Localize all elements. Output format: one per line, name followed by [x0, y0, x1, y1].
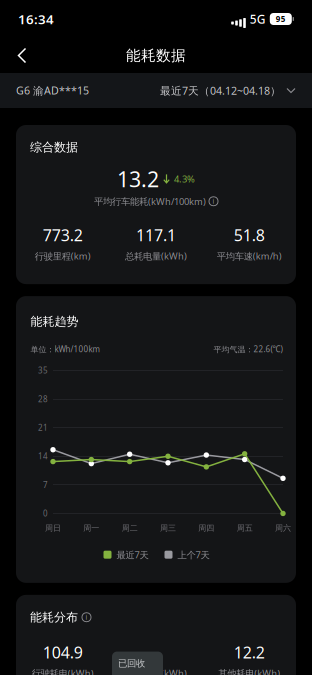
staticText: 21: [38, 422, 48, 433]
staticText: 周一: [83, 523, 99, 533]
staticText: i: [85, 613, 87, 622]
staticText: 平均车速(km/h): [217, 250, 282, 262]
staticText: 773.2: [43, 224, 83, 246]
staticText: 95: [276, 14, 286, 24]
staticText: 综合数据: [30, 140, 78, 155]
button[interactable]: Back: [0, 38, 44, 72]
staticText: 周三: [160, 523, 176, 533]
staticText: 周二: [122, 523, 138, 533]
staticText: 最近7天: [116, 548, 148, 561]
staticText: 13.2: [117, 165, 159, 193]
staticText: G6 渝AD***15: [16, 83, 89, 98]
staticText: 已回收: [118, 658, 145, 669]
staticText: 28: [38, 394, 48, 404]
staticText: 14: [38, 451, 48, 462]
staticText: 16:34: [18, 10, 54, 28]
staticText: 周五: [237, 523, 253, 533]
staticText: 周六: [275, 523, 291, 533]
staticText: 7: [43, 480, 48, 490]
staticText: 平均气温：22.6(°C): [213, 344, 282, 354]
staticText: 其他耗电(kWh): [218, 667, 280, 675]
staticText: 行驶里程(km): [35, 250, 91, 262]
staticText: 周四: [198, 523, 214, 533]
staticText: 总耗电量(kWh): [125, 250, 187, 262]
staticText: 51.8: [234, 224, 265, 246]
staticText: i: [212, 197, 214, 206]
staticText: 117.1: [136, 224, 176, 246]
staticText: 能耗分布: [30, 610, 78, 625]
staticText: 能耗数据: [126, 46, 186, 64]
staticText: 行驶耗电(kWh): [32, 667, 94, 675]
staticText: 35: [38, 365, 48, 376]
staticText: 104.9: [43, 642, 83, 663]
staticText: 平均行车能耗(kWh/100km): [94, 195, 206, 207]
staticText: 能量回收(kWh): [125, 667, 187, 675]
button[interactable]: G6 渝AD***15: [16, 83, 89, 98]
staticText: 4.3%: [174, 173, 195, 185]
staticText: 0: [43, 508, 48, 519]
staticText: 周日: [45, 523, 61, 533]
button[interactable]: 最近7天（04.12~04.18）: [160, 83, 296, 98]
staticText: 上个7天: [177, 548, 209, 561]
staticText: 12.2: [234, 642, 265, 663]
staticText: 5G: [250, 11, 266, 27]
staticText: 单位：kWh/100km: [30, 344, 99, 354]
staticText: 能耗趋势: [30, 314, 78, 329]
staticText: 最近7天（04.12~04.18）: [160, 83, 281, 98]
